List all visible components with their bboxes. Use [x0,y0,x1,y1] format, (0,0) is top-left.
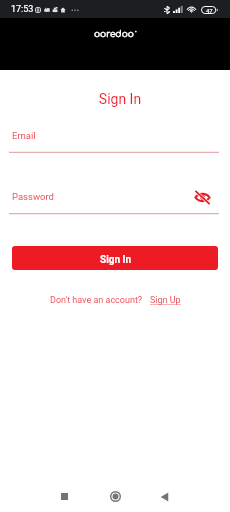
staticText: ooredoo [94,29,134,39]
staticText: Sign In [5,91,230,107]
button[interactable]: Back [149,481,180,512]
button[interactable]: Sign In [12,246,218,270]
staticText: 17:53 [11,4,34,15]
staticText: Sign Up [150,295,181,306]
button[interactable]: Sign Up [150,295,181,306]
staticText: Don't have an account? [50,295,143,306]
button[interactable]: Home [100,481,131,512]
staticText: 47 [206,7,213,14]
staticText: Password [12,191,54,202]
staticText: Email [12,130,36,141]
button[interactable]: Recent apps [49,481,80,512]
button[interactable]: Show password [194,189,211,206]
staticText: Sign In [100,254,132,266]
